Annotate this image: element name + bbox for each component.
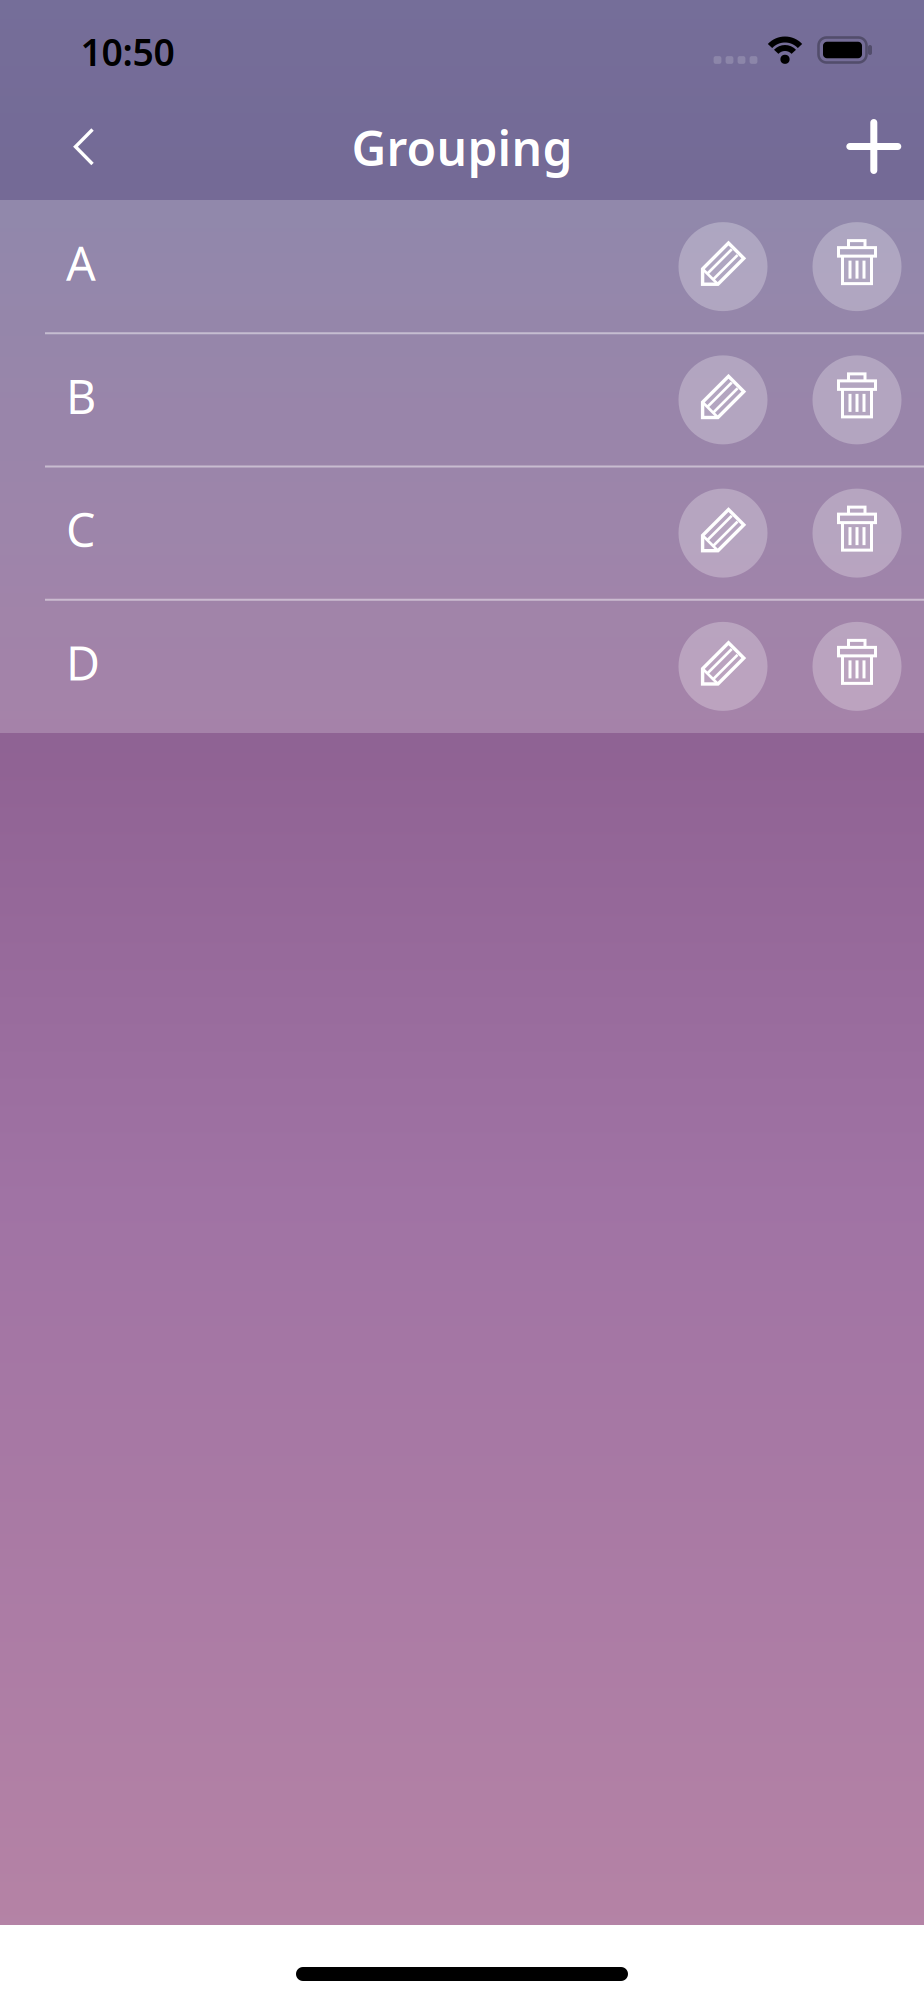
staticText: Grouping (351, 116, 572, 179)
button[interactable]: Edit C (678, 489, 767, 578)
button[interactable]: Delete A (812, 222, 901, 311)
button[interactable]: Add group (846, 118, 902, 174)
button[interactable]: Edit D (678, 622, 767, 711)
staticText: D (66, 631, 100, 693)
staticText: C (66, 498, 95, 560)
staticText: B (66, 365, 96, 427)
button[interactable]: Delete B (812, 355, 901, 444)
staticText: 10:50 (80, 27, 174, 76)
staticText: A (66, 232, 96, 294)
button[interactable]: Edit B (678, 355, 767, 444)
button[interactable]: Delete C (812, 489, 901, 578)
button[interactable]: Back (62, 119, 106, 175)
button[interactable]: Delete D (812, 622, 901, 711)
button[interactable]: Edit A (678, 222, 767, 311)
